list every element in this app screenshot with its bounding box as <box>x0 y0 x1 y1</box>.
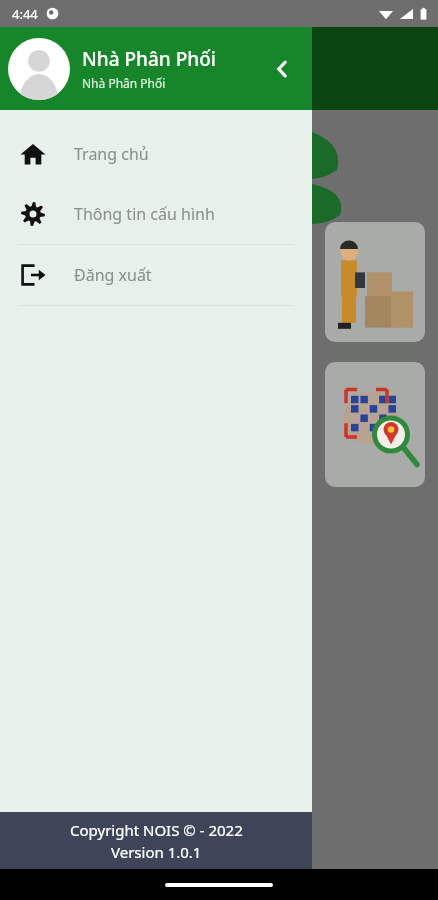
button[interactable]: Delivery <box>325 222 425 342</box>
staticText: Version 1.0.1 <box>111 842 202 862</box>
button[interactable]: Close drawer <box>262 49 302 89</box>
button[interactable]: Scan QR <box>325 362 425 487</box>
button[interactable]: Trang chủ <box>0 124 312 184</box>
staticText: Đăng xuất <box>74 264 152 286</box>
button[interactable]: Thông tin cấu hình <box>0 184 312 244</box>
staticText: 4:44 <box>12 5 38 23</box>
staticText: Nhà Phân Phối <box>82 75 166 91</box>
staticText: Trang chủ <box>74 143 149 165</box>
button[interactable]: Đăng xuất <box>0 245 312 305</box>
staticText: Thông tin cấu hình <box>74 203 215 225</box>
staticText: Copyright NOIS © - 2022 <box>70 820 243 840</box>
staticText: Nhà Phân Phối <box>82 46 216 72</box>
